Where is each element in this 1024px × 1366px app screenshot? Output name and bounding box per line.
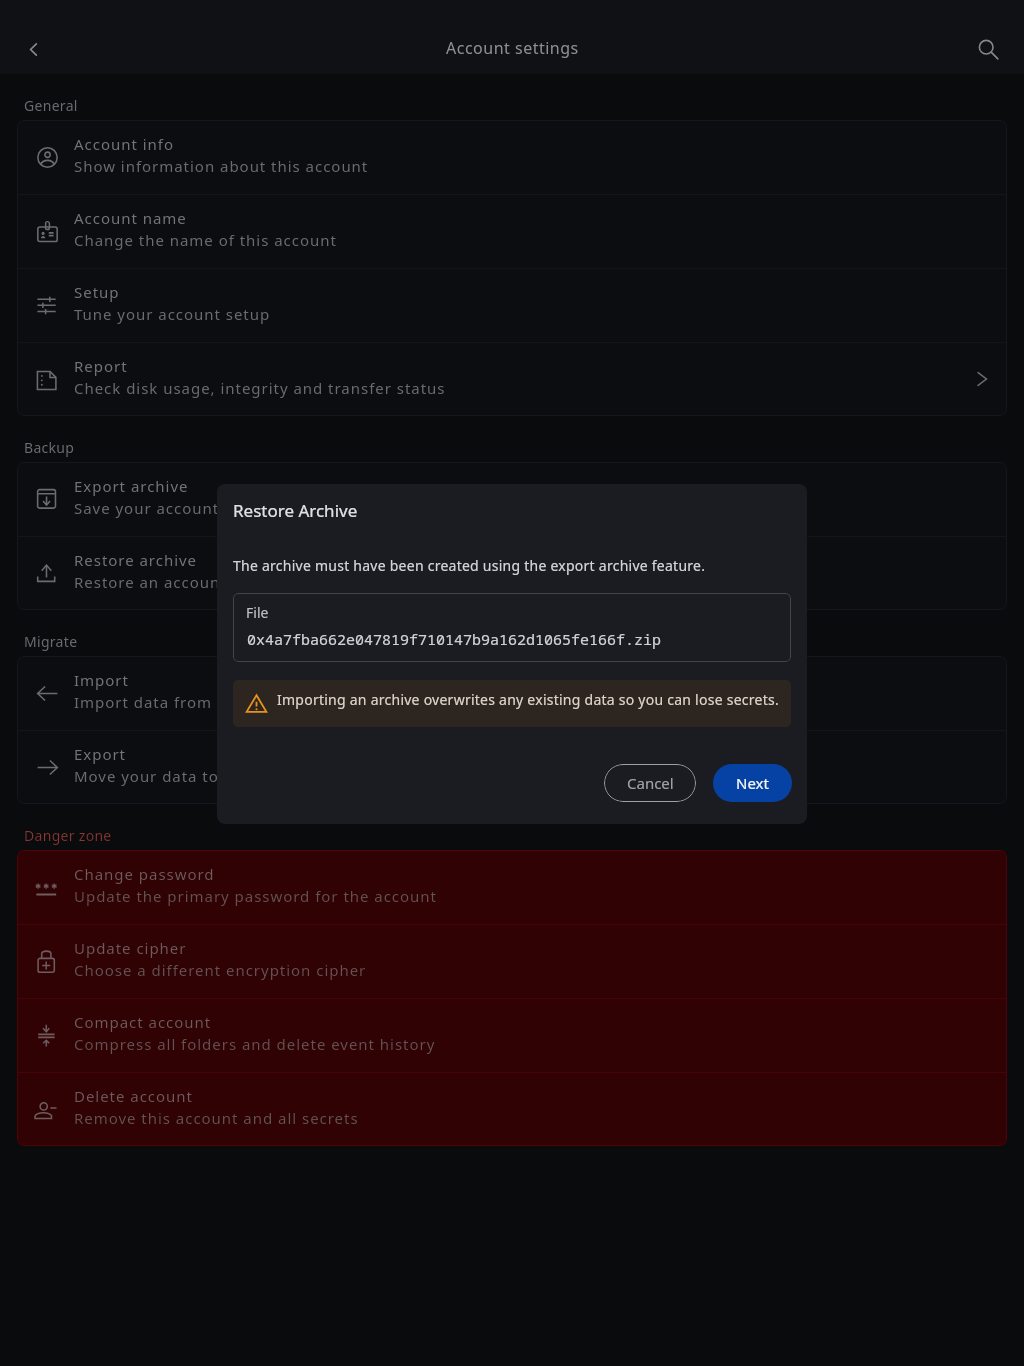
staticText: Export (74, 744, 127, 764)
staticText: Setup (74, 282, 120, 302)
staticText: Importing an archive overwrites any exis… (277, 690, 779, 709)
button[interactable]: Back (11, 27, 55, 71)
button[interactable]: Import (17, 656, 1007, 730)
staticText: Choose a different encryption cipher (74, 960, 367, 980)
button[interactable]: Account info (17, 120, 1007, 194)
staticText: Show information about this account (74, 156, 369, 176)
button[interactable]: Cancel (604, 764, 696, 802)
staticText: Export archive (74, 476, 189, 496)
staticText: Restore archive (74, 550, 198, 570)
staticText: Save your account data in an archive (74, 498, 367, 518)
staticText: Update cipher (74, 938, 187, 958)
staticText: Account info (74, 134, 174, 154)
staticText: Delete account (74, 1086, 193, 1106)
staticText: Account settings (446, 37, 579, 59)
button[interactable]: Search (967, 27, 1011, 71)
button[interactable]: Report (17, 342, 1007, 416)
staticText: Cancel (627, 773, 674, 793)
staticText: Restore an account from an archive (74, 572, 357, 592)
staticText: Backup (24, 438, 75, 457)
button[interactable]: Export archive (17, 462, 1007, 536)
staticText: Import (74, 670, 129, 690)
staticText: Move your data to another app (74, 766, 322, 786)
staticText: Update the primary password for the acco… (74, 886, 437, 906)
button[interactable]: Compact account (17, 998, 1007, 1072)
button[interactable]: Change password (17, 850, 1007, 924)
staticText: Change the name of this account (74, 230, 337, 250)
staticText: Check disk usage, integrity and transfer… (74, 378, 446, 398)
staticText: Remove this account and all secrets (74, 1108, 359, 1128)
staticText: The archive must have been created using… (233, 556, 706, 575)
button[interactable]: Update cipher (17, 924, 1007, 998)
staticText: Report (74, 356, 128, 376)
staticText: Account name (74, 208, 187, 228)
staticText: Migrate (24, 632, 78, 651)
staticText: File (246, 603, 269, 622)
staticText: Next (736, 773, 769, 793)
staticText: General (24, 96, 78, 115)
staticText: Compact account (74, 1012, 212, 1032)
staticText: Restore Archive (233, 499, 358, 522)
button[interactable]: Export (17, 730, 1007, 804)
staticText: Compress all folders and delete event hi… (74, 1034, 436, 1054)
staticText: Import data from other apps (74, 692, 303, 712)
button[interactable]: File (233, 593, 791, 662)
button[interactable]: Account name (17, 194, 1007, 268)
staticText: Change password (74, 864, 215, 884)
button[interactable]: Restore archive (17, 536, 1007, 610)
button[interactable]: Delete account (17, 1072, 1007, 1146)
button[interactable]: Setup (17, 268, 1007, 342)
staticText: 0x4a7fba662e047819f710147b9a162d1065fe16… (247, 629, 662, 649)
staticText: Danger zone (24, 826, 112, 845)
button[interactable]: Next (713, 764, 792, 802)
staticText: Tune your account setup (74, 304, 271, 324)
